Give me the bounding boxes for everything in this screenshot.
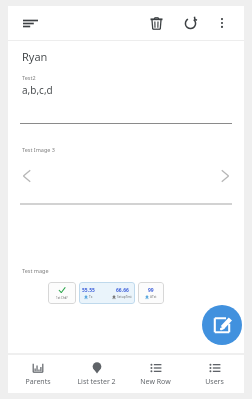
button[interactable]: 1st Chk? <box>48 282 76 304</box>
staticText: New Row <box>140 377 171 387</box>
button[interactable]: More options <box>210 11 234 35</box>
button[interactable]: List tester 2 <box>67 358 126 391</box>
button[interactable]: New Row <box>126 358 185 391</box>
button[interactable]: Users <box>185 358 244 391</box>
staticText: 1st Chk? <box>56 296 68 300</box>
staticText: Ryan <box>22 49 48 64</box>
button[interactable]: 55.55 <box>79 282 135 304</box>
button[interactable]: Previous <box>16 165 38 187</box>
button[interactable]: Delete <box>144 11 168 35</box>
staticText: 66.66 <box>116 287 129 294</box>
button[interactable]: Refresh <box>178 11 202 35</box>
staticText: List tester 2 <box>77 377 116 387</box>
button[interactable]: Parents <box>8 358 67 391</box>
staticText: Test mage <box>22 267 49 274</box>
staticText: Tx <box>89 295 93 299</box>
staticText: Test Image 3 <box>22 146 55 153</box>
staticText: 55.55 <box>82 287 95 294</box>
staticText: Users <box>205 377 224 387</box>
staticText: #Tst <box>150 295 157 299</box>
button[interactable]: 99 <box>138 282 164 304</box>
staticText: Test2 <box>22 74 36 81</box>
staticText: SetupTest <box>117 295 132 299</box>
button[interactable]: Sort <box>18 11 42 35</box>
staticText: a,b,c,d <box>22 83 53 97</box>
button[interactable]: Edit <box>202 305 242 345</box>
button[interactable]: Next <box>214 165 236 187</box>
staticText: Parents <box>25 377 51 387</box>
staticText: 99 <box>148 287 154 294</box>
